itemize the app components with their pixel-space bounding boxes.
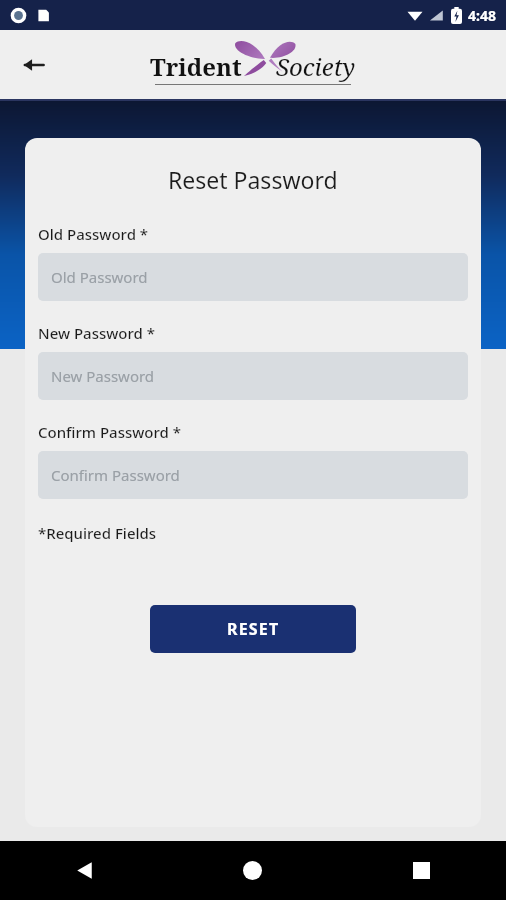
staticText: New Password * [38, 323, 156, 343]
staticText: Old Password [51, 267, 148, 287]
staticText: New Password [51, 366, 155, 386]
staticText: Confirm Password * [38, 422, 181, 442]
staticText: RESET [227, 618, 280, 640]
staticText: Old Password * [38, 224, 149, 244]
staticText: Reset Password [168, 164, 338, 195]
button[interactable]: Back [10, 41, 58, 89]
button[interactable]: Home [168, 841, 337, 900]
button[interactable]: Recent apps [337, 841, 506, 900]
button[interactable]: RESET [150, 605, 356, 653]
staticText: Confirm Password [51, 465, 180, 485]
button[interactable]: Back [0, 841, 168, 900]
staticText: Society [276, 50, 356, 83]
staticText: 4:48 [468, 6, 496, 25]
staticText: Trident [150, 50, 242, 83]
button[interactable]: New Password [38, 352, 468, 400]
button[interactable]: Old Password [38, 253, 468, 301]
staticText: *Required Fields [38, 523, 157, 543]
button[interactable]: Confirm Password [38, 451, 468, 499]
